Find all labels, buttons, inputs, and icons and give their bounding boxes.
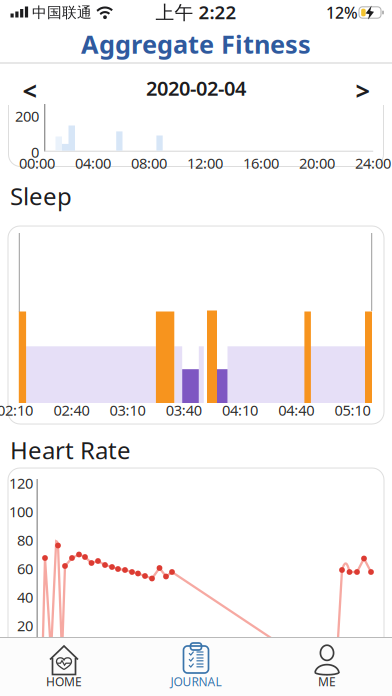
staticText: 24:00 [355,153,391,173]
staticText: 80 [17,530,33,550]
staticText: 03:10 [110,400,146,420]
staticText: 60 [17,559,33,578]
staticText: 02:10 [0,400,33,420]
staticText: 04:40 [278,400,314,420]
staticText: 40 [17,587,33,607]
staticText: 04:00 [75,153,111,173]
staticText: 20:00 [299,153,335,173]
staticText: 0 [31,142,39,162]
staticText: 中国联通 [32,3,92,21]
staticText: 120 [9,473,33,493]
staticText: JOURNAL [170,673,221,689]
staticText: ME [318,673,336,689]
staticText: 200 [15,106,39,126]
staticText: 上午 2:22 [155,0,236,24]
staticText: < [22,74,36,107]
staticText: 100 [9,502,33,521]
staticText: 2020-02-04 [146,75,246,101]
staticText: Heart Rate [10,434,131,466]
staticText: 20 [17,616,33,635]
staticText: > [355,74,369,107]
staticText: 00:00 [19,153,55,173]
staticText: 02:40 [53,400,89,420]
staticText: HOME [46,673,82,689]
staticText: 08:00 [131,153,167,173]
staticText: 16:00 [243,153,279,173]
staticText: 03:40 [166,400,202,420]
staticText: 12:00 [187,153,223,173]
staticText: 12% [326,2,358,23]
staticText: Sleep [10,180,72,212]
staticText: 04:10 [222,400,258,420]
staticText: Aggregate Fitness [81,27,311,61]
staticText: 05:10 [334,400,370,420]
